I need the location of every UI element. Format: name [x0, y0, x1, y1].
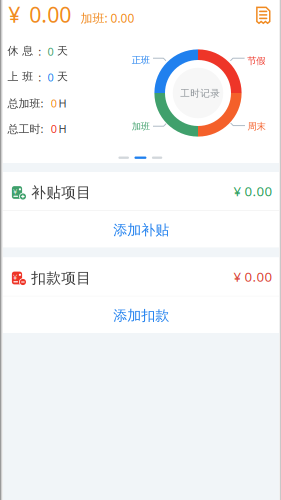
staticText: ¥ 0.00: [233, 267, 272, 286]
staticText: 0.00: [29, 0, 71, 29]
staticText: 0: [47, 44, 53, 59]
staticText: 0: [51, 121, 57, 136]
button[interactable]: 添加补贴: [0, 211, 281, 247]
staticText: 加班: [132, 120, 150, 132]
button[interactable]: 添加扣款: [0, 296, 281, 333]
staticText: 休: [7, 44, 18, 58]
staticText: H: [59, 96, 67, 111]
staticText: 正班: [132, 54, 150, 66]
staticText: 补贴项目: [31, 183, 91, 202]
staticText: ¥: [13, 186, 17, 196]
button[interactable]: ¥: [0, 257, 281, 296]
staticText: 周末: [247, 121, 265, 132]
staticText: :: [38, 44, 41, 59]
staticText: 0: [51, 96, 57, 111]
staticText: 添加补贴: [113, 221, 169, 239]
staticText: 天: [57, 44, 68, 58]
staticText: ¥ 0.00: [233, 182, 272, 200]
staticText: 扣款项目: [31, 269, 91, 287]
staticText: 班: [22, 70, 33, 84]
staticText: 工时记录: [180, 87, 220, 99]
button[interactable]: 工资条: [249, 1, 277, 29]
staticText: 加班: 0.00: [81, 10, 135, 26]
staticText: H: [59, 121, 67, 136]
staticText: 总加班:: [7, 96, 43, 111]
staticText: 节假: [247, 55, 265, 67]
staticText: 总工时:: [7, 121, 43, 136]
staticText: 天: [57, 70, 68, 84]
button[interactable]: ¥: [0, 172, 281, 210]
staticText: 息: [22, 44, 33, 58]
staticText: :: [38, 70, 41, 85]
staticText: ¥: [13, 272, 17, 282]
staticText: 添加扣款: [113, 307, 169, 324]
staticText: ¥: [8, 0, 20, 29]
staticText: 上: [7, 70, 18, 84]
staticText: 0: [47, 70, 53, 85]
